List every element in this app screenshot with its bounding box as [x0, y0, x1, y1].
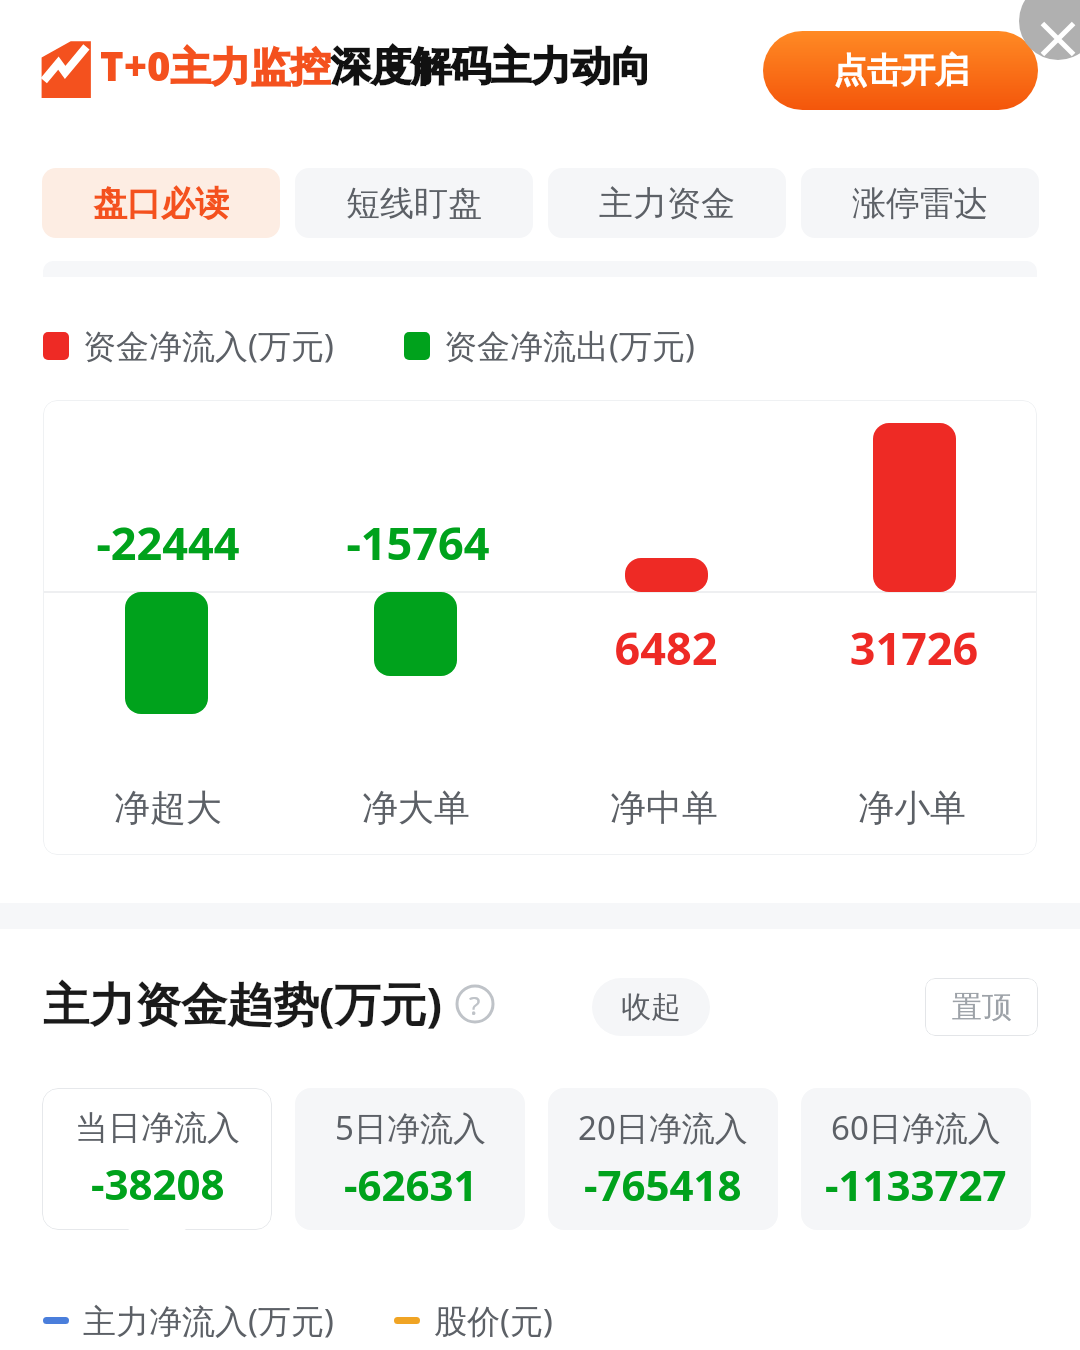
staticText: 点击开启	[833, 49, 969, 92]
staticText: 净中单	[564, 785, 764, 830]
button[interactable]: 盘口必读	[42, 168, 280, 238]
staticText: -62631	[344, 1156, 478, 1213]
button[interactable]: T+0主力监控	[0, 0, 1080, 140]
button[interactable]: 点击开启	[763, 31, 1038, 110]
staticText: -38208	[91, 1155, 225, 1212]
button[interactable]: 收起	[592, 978, 710, 1036]
staticText: 深度解码主力动向	[331, 41, 651, 91]
staticText: -1133727	[825, 1156, 1007, 1213]
staticText: 短线盯盘	[346, 182, 482, 225]
staticText: 置顶	[952, 988, 1012, 1026]
button[interactable]: 短线盯盘	[295, 168, 533, 238]
staticText: -22444	[68, 512, 268, 573]
button[interactable]: 5日净流入	[295, 1088, 525, 1230]
button[interactable]: 20日净流入	[548, 1088, 778, 1230]
staticText: 资金净流入(万元)	[83, 323, 334, 368]
staticText: 主力资金趋势(万元)	[43, 972, 443, 1035]
staticText: T+0主力监控	[100, 38, 331, 93]
staticText: 5日净流入	[335, 1105, 486, 1150]
button[interactable]: 当日净流入	[42, 1088, 272, 1230]
staticText: 当日净流入	[75, 1107, 240, 1149]
staticText: 收起	[621, 988, 681, 1026]
button[interactable]: 60日净流入	[801, 1088, 1031, 1230]
staticText: ?	[469, 987, 481, 1022]
button[interactable]: 置顶	[925, 978, 1038, 1036]
staticText: 31726	[814, 617, 1014, 678]
button[interactable]: Help	[455, 984, 495, 1024]
staticText: 涨停雷达	[852, 182, 988, 225]
button[interactable]: Close	[1019, 0, 1080, 60]
staticText: 盘口必读	[93, 182, 229, 225]
staticText: 6482	[566, 617, 766, 678]
staticText: -15764	[318, 512, 518, 573]
staticText: 净超大	[68, 785, 268, 830]
staticText: -765418	[584, 1156, 742, 1213]
staticText: 主力净流入(万元)	[83, 1298, 334, 1343]
button[interactable]: 主力资金	[548, 168, 786, 238]
staticText: 资金净流出(万元)	[444, 323, 695, 368]
button[interactable]: -22444	[43, 400, 1037, 855]
staticText: 20日净流入	[578, 1105, 748, 1150]
staticText: 净小单	[812, 785, 1012, 830]
staticText: 股价(元)	[434, 1298, 553, 1343]
staticText: 60日净流入	[831, 1105, 1001, 1150]
staticText: 主力资金	[599, 182, 735, 225]
button[interactable]: 涨停雷达	[801, 168, 1039, 238]
staticText: 净大单	[316, 785, 516, 830]
